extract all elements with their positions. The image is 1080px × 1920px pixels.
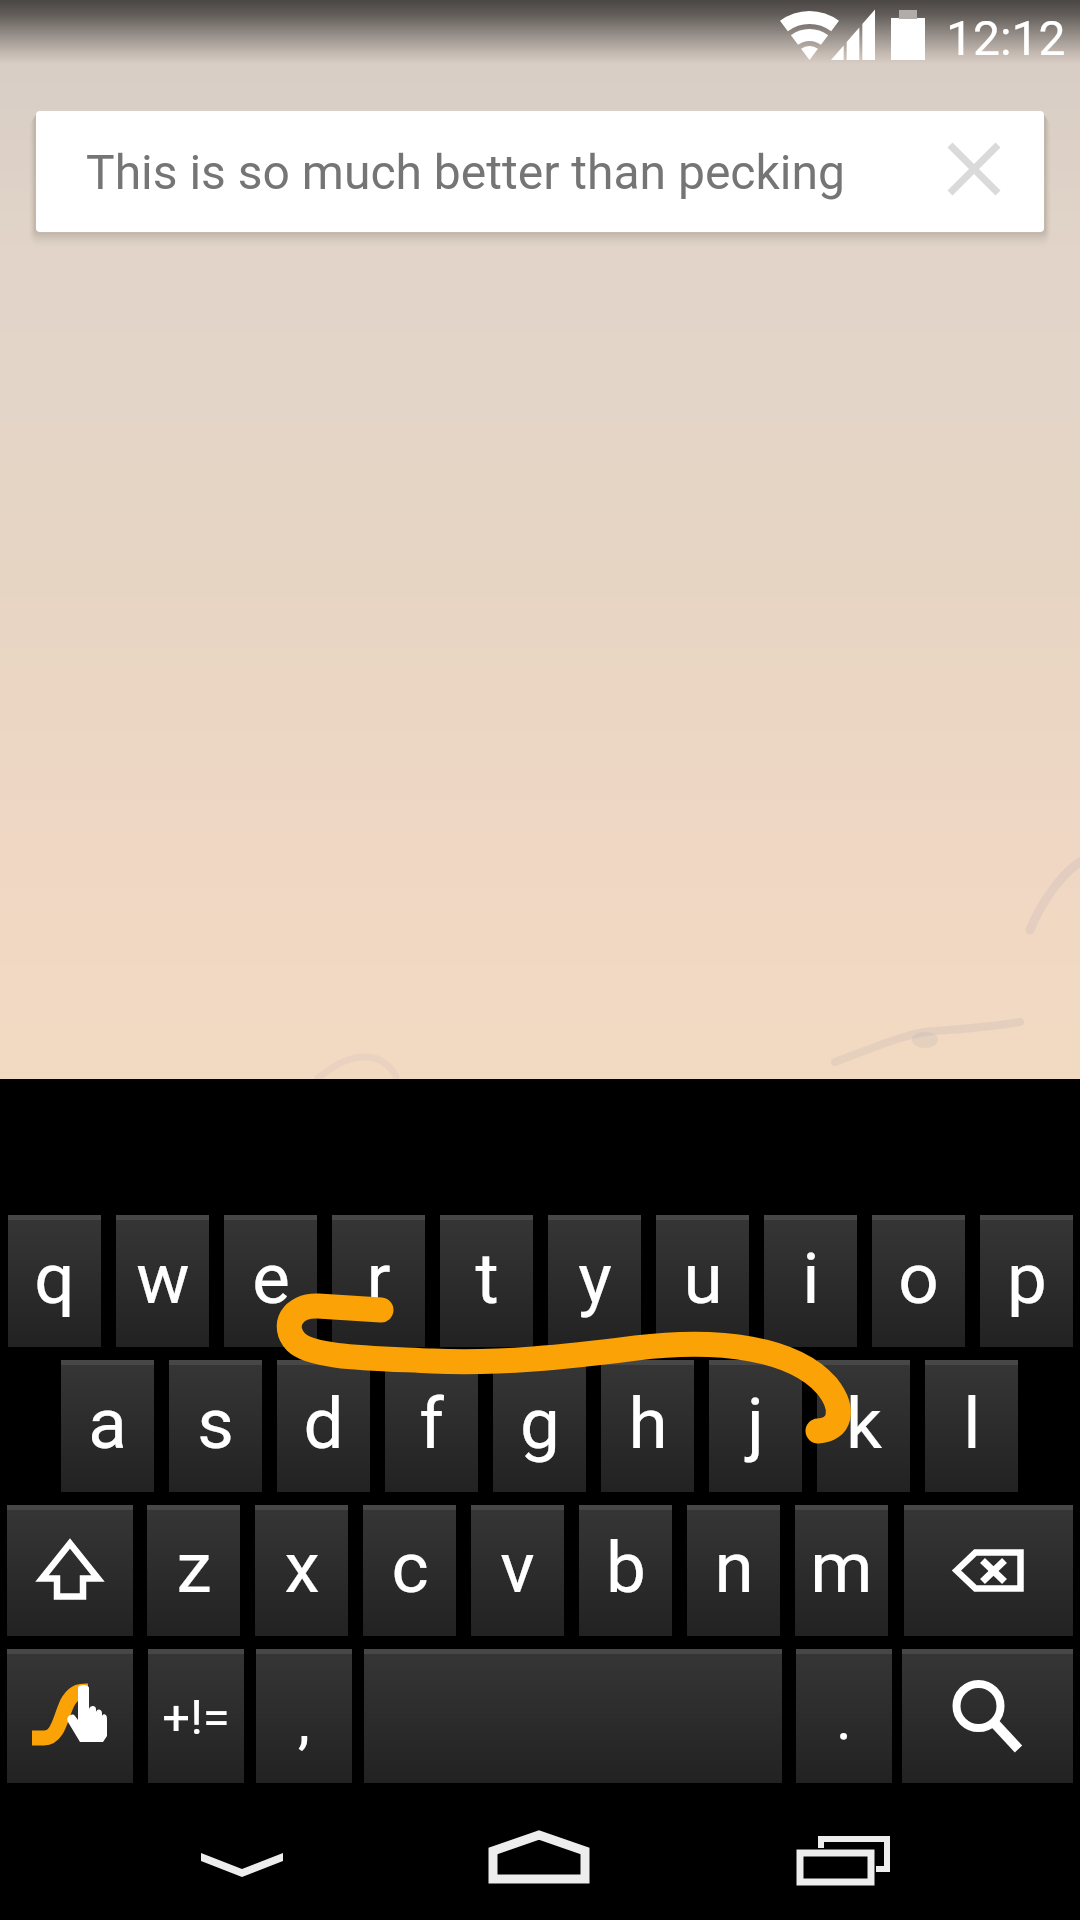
staticText: q bbox=[34, 1237, 75, 1320]
button[interactable]: Home bbox=[469, 1809, 609, 1920]
staticText: f bbox=[419, 1382, 444, 1465]
button[interactable]: q bbox=[8, 1215, 101, 1347]
button[interactable]: u bbox=[656, 1215, 749, 1347]
staticText: k bbox=[846, 1382, 882, 1465]
button[interactable] bbox=[364, 1649, 782, 1783]
staticText: n bbox=[714, 1526, 754, 1609]
button[interactable]: . bbox=[796, 1649, 892, 1783]
staticText: , bbox=[298, 1686, 310, 1756]
staticText: d bbox=[303, 1382, 344, 1465]
staticText: j bbox=[747, 1382, 764, 1465]
staticText: l bbox=[963, 1382, 981, 1465]
button[interactable]: w bbox=[116, 1215, 209, 1347]
button[interactable]: i bbox=[764, 1215, 857, 1347]
staticText: i bbox=[802, 1237, 820, 1320]
button[interactable]: h bbox=[601, 1360, 694, 1492]
button[interactable]: k bbox=[817, 1360, 910, 1492]
staticText: p bbox=[1007, 1237, 1047, 1320]
button[interactable] bbox=[7, 1649, 133, 1783]
staticText: w bbox=[136, 1237, 190, 1320]
button[interactable]: d bbox=[277, 1360, 370, 1492]
staticText: . bbox=[836, 1683, 852, 1753]
staticText: y bbox=[578, 1237, 612, 1320]
staticText: b bbox=[606, 1526, 646, 1609]
button[interactable]: Recent apps bbox=[772, 1809, 912, 1920]
staticText: c bbox=[391, 1526, 429, 1609]
button[interactable]: v bbox=[471, 1505, 564, 1636]
staticText: a bbox=[88, 1382, 127, 1465]
button[interactable]: s bbox=[169, 1360, 262, 1492]
staticText: This is so much better than pecking bbox=[86, 144, 845, 200]
button[interactable]: b bbox=[579, 1505, 672, 1636]
button[interactable]: This is so much better than pecking bbox=[36, 111, 1044, 232]
staticText: +!= bbox=[162, 1689, 230, 1746]
button[interactable]: c bbox=[363, 1505, 456, 1636]
staticText: g bbox=[520, 1382, 560, 1465]
staticText: r bbox=[366, 1237, 391, 1320]
button[interactable]: y bbox=[548, 1215, 641, 1347]
button[interactable] bbox=[904, 1505, 1073, 1636]
button[interactable]: Hide keyboard bbox=[172, 1809, 312, 1920]
button[interactable] bbox=[902, 1649, 1073, 1783]
button[interactable]: Clear text bbox=[929, 127, 1019, 217]
button[interactable]: e bbox=[224, 1215, 317, 1347]
button[interactable] bbox=[7, 1505, 133, 1636]
button[interactable]: p bbox=[980, 1215, 1073, 1347]
button[interactable]: o bbox=[872, 1215, 965, 1347]
button[interactable]: m bbox=[795, 1505, 888, 1636]
staticText: z bbox=[176, 1526, 212, 1609]
staticText: 12:12 bbox=[946, 10, 1066, 66]
button[interactable]: , bbox=[256, 1649, 352, 1783]
staticText: m bbox=[810, 1526, 873, 1609]
button[interactable]: x bbox=[255, 1505, 348, 1636]
staticText: e bbox=[252, 1237, 290, 1320]
button[interactable]: j bbox=[709, 1360, 802, 1492]
button[interactable]: l bbox=[925, 1360, 1018, 1492]
button[interactable]: +!= bbox=[148, 1649, 244, 1783]
staticText: o bbox=[898, 1237, 939, 1320]
staticText: v bbox=[500, 1526, 535, 1609]
staticText: u bbox=[683, 1237, 723, 1320]
button[interactable]: f bbox=[385, 1360, 478, 1492]
staticText: s bbox=[197, 1382, 234, 1465]
button[interactable]: r bbox=[332, 1215, 425, 1347]
button[interactable]: n bbox=[687, 1505, 780, 1636]
staticText: h bbox=[628, 1382, 668, 1465]
staticText: t bbox=[475, 1237, 499, 1320]
button[interactable]: g bbox=[493, 1360, 586, 1492]
button[interactable]: t bbox=[440, 1215, 533, 1347]
staticText: x bbox=[284, 1526, 320, 1609]
button[interactable]: z bbox=[147, 1505, 240, 1636]
button[interactable]: a bbox=[61, 1360, 154, 1492]
